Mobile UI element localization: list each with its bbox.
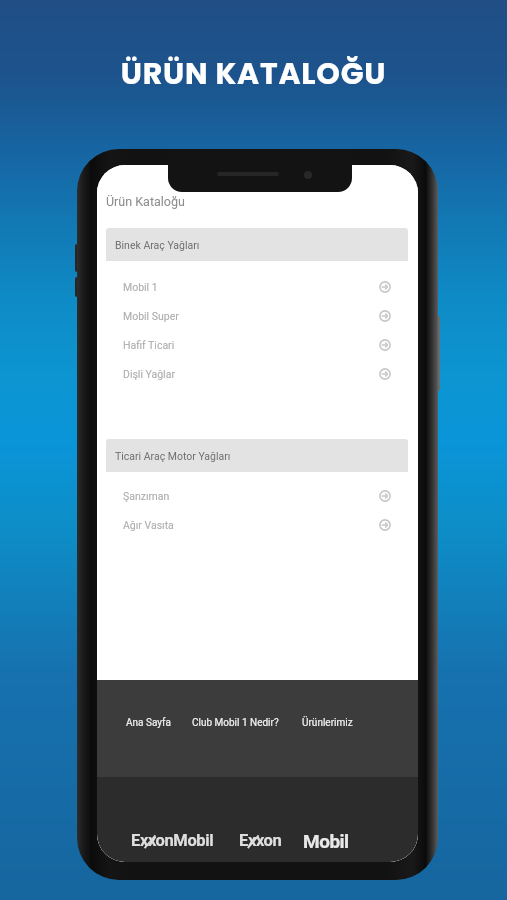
- button[interactable]: Ağır Vasıta: [106, 510, 408, 539]
- staticText: Ağır Vasıta: [123, 519, 174, 531]
- staticText: Club Mobil 1 Nedir?: [192, 717, 279, 729]
- staticText: Ana Sayfa: [126, 717, 171, 729]
- staticText: Dişli Yağlar: [123, 368, 175, 380]
- button[interactable]: Exxon: [239, 831, 282, 847]
- button[interactable]: Hafif Ticari: [106, 330, 408, 359]
- staticText: Hafif Ticari: [123, 339, 175, 351]
- staticText: Mobil 1: [123, 281, 158, 293]
- staticText: Binek Araç Yağları: [115, 239, 200, 251]
- button[interactable]: Ana Sayfa: [122, 711, 175, 735]
- staticText: ÜRÜN KATALOĞU: [0, 53, 507, 95]
- button[interactable]: Mobil Super: [106, 301, 408, 330]
- other: Detay: [379, 281, 391, 293]
- other: Detay: [379, 519, 391, 531]
- staticText: Ürün Kataloğu: [106, 194, 185, 209]
- other: Detay: [379, 368, 391, 380]
- staticText: Ticari Araç Motor Yağları: [115, 450, 231, 462]
- staticText: Mobil: [303, 830, 349, 848]
- button[interactable]: Club Mobil 1 Nedir?: [188, 711, 283, 735]
- button[interactable]: Dişli Yağlar: [106, 359, 408, 388]
- staticText: Ürünlerimiz: [302, 717, 353, 729]
- staticText: ExxonMobil: [131, 831, 214, 847]
- button[interactable]: ExxonMobil: [131, 831, 220, 847]
- button[interactable]: Şanzıman: [106, 481, 408, 510]
- staticText: Şanzıman: [123, 490, 170, 502]
- other: Detay: [379, 310, 391, 322]
- other: Detay: [379, 339, 391, 351]
- button[interactable]: Ürünlerimiz: [298, 711, 357, 735]
- button[interactable]: Mobil 1: [106, 272, 408, 301]
- button[interactable]: Binek Araç Yağları: [106, 228, 408, 261]
- staticText: Mobil Super: [123, 310, 179, 322]
- staticText: Exxon: [239, 831, 282, 847]
- other: Detay: [379, 490, 391, 502]
- button[interactable]: Ticari Araç Motor Yağları: [106, 439, 408, 472]
- button[interactable]: Mobil: [303, 830, 355, 848]
